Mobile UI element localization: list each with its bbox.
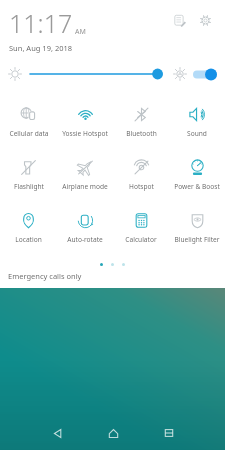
button[interactable]: Airplane mode bbox=[57, 148, 113, 201]
button[interactable]: Calculator bbox=[113, 201, 169, 254]
staticText: AM bbox=[75, 27, 86, 37]
button[interactable]: Cellular data bbox=[0, 95, 57, 148]
button[interactable]: Bluetooth bbox=[113, 95, 169, 148]
staticText: Hotspot bbox=[129, 182, 154, 191]
staticText: 11:17 bbox=[9, 6, 73, 40]
staticText: Calculator bbox=[125, 235, 157, 244]
staticText: Yossie Hotspot bbox=[62, 129, 108, 138]
button[interactable]: Settings bbox=[194, 9, 216, 31]
staticText: Airplane mode bbox=[62, 182, 108, 191]
button[interactable]: Hotspot bbox=[113, 148, 169, 201]
button[interactable]: Yossie Hotspot bbox=[57, 95, 113, 148]
button[interactable]: Auto-rotate bbox=[57, 201, 113, 254]
button[interactable]: Brightness bbox=[30, 63, 163, 85]
staticText: Power & Boost bbox=[174, 182, 220, 191]
button[interactable]: Bluelight Filter bbox=[169, 201, 225, 254]
staticText: Sun, Aug 19, 2018 bbox=[9, 43, 73, 53]
button[interactable]: Location bbox=[0, 201, 57, 254]
staticText: Location bbox=[15, 235, 42, 244]
button[interactable]: Edit quick settings bbox=[168, 9, 190, 31]
button[interactable]: Power & Boost bbox=[169, 148, 225, 201]
button[interactable]: Home bbox=[85, 416, 141, 450]
staticText: Bluetooth bbox=[126, 129, 157, 138]
staticText: Bluelight Filter bbox=[174, 235, 220, 244]
button[interactable]: Back bbox=[29, 416, 85, 450]
staticText: Sound bbox=[187, 129, 207, 138]
staticText: Cellular data bbox=[9, 129, 49, 138]
button[interactable]: Sound bbox=[169, 95, 225, 148]
staticText: Flashlight bbox=[14, 182, 44, 191]
button[interactable]: Recent apps bbox=[141, 416, 197, 450]
staticText: Emergency calls only bbox=[8, 271, 82, 281]
button[interactable]: Flashlight bbox=[0, 148, 57, 201]
staticText: Auto-rotate bbox=[67, 235, 103, 244]
button[interactable]: Auto brightness bbox=[193, 68, 217, 81]
